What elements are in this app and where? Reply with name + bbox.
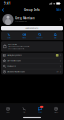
button[interactable]: Media, Links, and Docs bbox=[1, 53, 63, 58]
staticText: Starred Messages bbox=[7, 60, 21, 62]
button[interactable]: Mute bbox=[47, 33, 63, 39]
button[interactable]: Search bbox=[32, 33, 47, 39]
staticText: encrypted. Tap to verify. bbox=[8, 48, 24, 50]
staticText: Add to Contacts bbox=[25, 27, 38, 29]
button[interactable]: Starred Messages bbox=[1, 58, 63, 63]
staticText: Chat Search bbox=[7, 65, 16, 67]
staticText: Settings bbox=[53, 111, 58, 113]
button[interactable]: Chats bbox=[32, 104, 48, 115]
staticText: Encryption bbox=[8, 43, 17, 45]
staticText: +1 415 555 0134 bbox=[15, 21, 27, 22]
staticText: Search bbox=[37, 37, 43, 39]
button[interactable]: Audio bbox=[1, 33, 16, 39]
staticText: Media, Links, and Docs bbox=[7, 54, 22, 56]
staticText: Off bbox=[56, 71, 58, 73]
button[interactable]: Encryption bbox=[0, 40, 64, 52]
staticText: Disappearing Messages bbox=[7, 71, 25, 73]
staticText: 9:41 bbox=[4, 2, 11, 5]
staticText: Audio bbox=[7, 37, 11, 39]
button[interactable]: Chat Search bbox=[1, 64, 63, 69]
button[interactable]: Add to Contacts bbox=[0, 26, 64, 31]
staticText: Video bbox=[22, 37, 26, 39]
staticText: Status bbox=[6, 111, 10, 113]
staticText: Greg Morrison bbox=[15, 16, 35, 20]
staticText: Group Info bbox=[24, 8, 40, 12]
staticText: Mute bbox=[54, 37, 57, 39]
button[interactable]: Edit bbox=[54, 7, 64, 13]
staticText: Calls bbox=[22, 111, 25, 113]
button[interactable]: Settings bbox=[48, 104, 64, 115]
staticText: Messages and calls are end-to- bbox=[8, 46, 29, 47]
button[interactable]: Video bbox=[16, 33, 32, 39]
button[interactable]: Status bbox=[0, 104, 16, 115]
button[interactable]: Disappearing Messages bbox=[1, 69, 63, 74]
staticText: Chats bbox=[38, 111, 42, 113]
button[interactable]: Back bbox=[0, 7, 7, 13]
button[interactable]: Greg Morrison bbox=[0, 13, 64, 26]
button[interactable]: Calls bbox=[16, 104, 32, 115]
staticText: Edit bbox=[56, 8, 61, 12]
